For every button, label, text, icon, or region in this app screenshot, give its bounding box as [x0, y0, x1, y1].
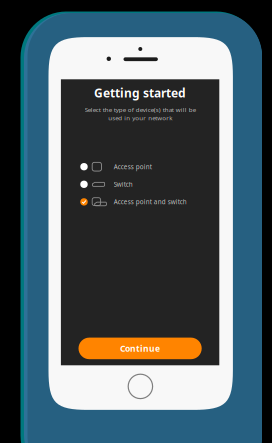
- button[interactable]: Continue: [78, 338, 202, 359]
- staticText: Access point: [114, 162, 152, 171]
- button[interactable]: Access point and switch: [80, 195, 192, 208]
- staticText: Select the type of device(s) that will b…: [85, 105, 196, 122]
- staticText: Switch: [114, 180, 133, 188]
- button[interactable]: Switch: [80, 178, 192, 191]
- staticText: Getting started: [94, 85, 186, 101]
- staticText: Continue: [120, 343, 160, 354]
- button[interactable]: Access point: [80, 160, 192, 173]
- staticText: Access point and switch: [114, 198, 187, 206]
